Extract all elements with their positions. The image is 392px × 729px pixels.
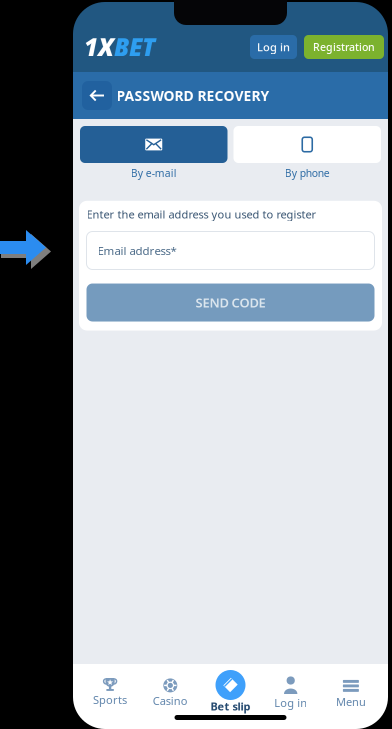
button[interactable]: Casino xyxy=(140,668,200,712)
button[interactable]: Sports xyxy=(80,668,140,712)
staticText: By phone xyxy=(285,166,330,180)
staticText: By e-mail xyxy=(131,166,177,180)
staticText: Email address* xyxy=(97,243,176,258)
staticText: SEND CODE xyxy=(195,294,265,311)
button[interactable]: Menu xyxy=(321,668,381,712)
button[interactable]: Log in xyxy=(250,35,297,59)
staticText: Enter the email address you used to regi… xyxy=(86,207,316,221)
staticText: 1X xyxy=(84,31,114,63)
staticText: Registration xyxy=(313,40,375,54)
staticText: Sports xyxy=(93,692,127,707)
staticText: Bet slip xyxy=(210,699,250,713)
staticText: Log in xyxy=(257,40,290,54)
staticText: PASSWORD RECOVERY xyxy=(116,86,269,105)
staticText: Casino xyxy=(153,693,188,708)
button[interactable]: Back xyxy=(82,81,112,110)
button[interactable]: Log in xyxy=(261,668,321,712)
button[interactable]: By phone xyxy=(233,126,381,180)
button[interactable]: By e-mail xyxy=(80,126,227,180)
staticText: Menu xyxy=(336,694,366,709)
button[interactable]: SEND CODE xyxy=(86,283,374,321)
button[interactable]: Registration xyxy=(304,35,384,59)
button[interactable]: Bet slip xyxy=(200,664,261,716)
staticText: BET xyxy=(114,31,155,63)
staticText: Log in xyxy=(274,695,307,710)
